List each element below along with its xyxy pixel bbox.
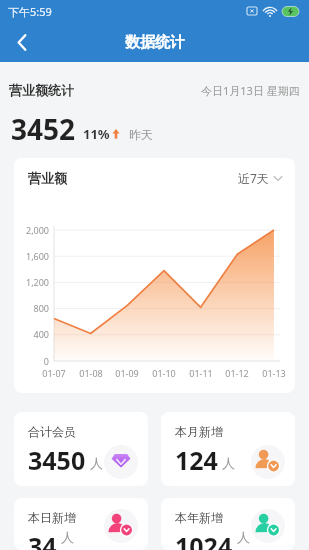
staticText: 合计会员 bbox=[28, 424, 76, 439]
staticText: 01-13 bbox=[262, 367, 286, 379]
staticText: 下午5:59 bbox=[8, 4, 52, 19]
staticText: 01-10 bbox=[152, 367, 176, 379]
staticText: 数据统计 bbox=[125, 33, 185, 52]
staticText: 3452 bbox=[11, 110, 76, 148]
staticText: 01-11 bbox=[189, 367, 213, 379]
staticText: 本月新增 bbox=[175, 424, 223, 439]
staticText: 2,000 bbox=[25, 224, 49, 236]
button[interactable]: 本月新增 bbox=[161, 412, 295, 486]
staticText: 1,600 bbox=[25, 250, 49, 262]
button[interactable]: 本年新增 bbox=[161, 498, 295, 550]
staticText: 营业额统计 bbox=[9, 82, 74, 98]
staticText: 人 bbox=[90, 455, 103, 471]
staticText: 今日1月13日 星期四 bbox=[201, 83, 300, 98]
staticText: 本年新增 bbox=[175, 510, 223, 525]
staticText: 人 bbox=[237, 529, 250, 544]
staticText: 01-08 bbox=[79, 367, 103, 379]
staticText: 3450 bbox=[28, 443, 86, 477]
button[interactable]: 本日新增 bbox=[14, 498, 148, 550]
staticText: 01-12 bbox=[225, 367, 249, 379]
button[interactable]: 合计会员 bbox=[14, 412, 148, 486]
staticText: 本日新增 bbox=[28, 510, 76, 525]
staticText: 01-09 bbox=[115, 367, 139, 379]
staticText: 人 bbox=[61, 529, 74, 544]
staticText: 124 bbox=[175, 443, 218, 477]
staticText: 1,200 bbox=[25, 276, 49, 288]
staticText: 人 bbox=[222, 455, 235, 471]
staticText: 34 bbox=[28, 529, 57, 550]
button[interactable]: 营业额 bbox=[14, 158, 295, 393]
staticText: 1024 bbox=[175, 529, 233, 550]
staticText: 0 bbox=[43, 355, 49, 367]
button[interactable]: 近7天 bbox=[238, 170, 283, 186]
staticText: 营业额 bbox=[28, 170, 67, 186]
staticText: 近7天 bbox=[238, 170, 269, 186]
staticText: 800 bbox=[33, 302, 49, 314]
staticText: 11% bbox=[83, 125, 110, 143]
button[interactable] bbox=[8, 28, 36, 56]
staticText: 400 bbox=[33, 328, 49, 340]
staticText: 01-07 bbox=[42, 367, 66, 379]
staticText: 昨天 bbox=[129, 127, 153, 142]
